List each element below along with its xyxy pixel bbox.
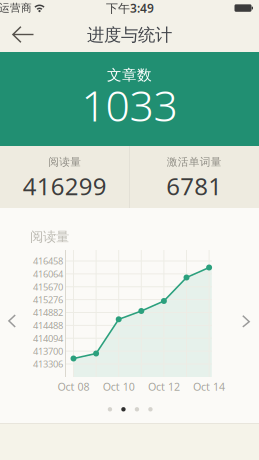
- staticText: 阅读量: [30, 228, 69, 245]
- staticText: 416299: [23, 170, 107, 202]
- staticText: 6781: [166, 170, 222, 202]
- staticText: 激活单词量: [167, 155, 222, 168]
- staticText: 文章数: [107, 66, 152, 84]
- staticText: 下午3:49: [106, 0, 154, 16]
- button[interactable]: Back: [3, 16, 41, 52]
- staticText: 阅读量: [48, 155, 81, 168]
- staticText: 415670: [33, 281, 63, 293]
- button[interactable]: Next page: [237, 311, 255, 333]
- staticText: 进度与统计: [87, 24, 172, 46]
- staticText: 414488: [33, 319, 63, 332]
- staticText: 1033: [81, 77, 177, 133]
- staticText: Oct 12: [148, 379, 180, 394]
- button[interactable]: Previous page: [3, 310, 21, 332]
- staticText: 运营商: [0, 1, 32, 14]
- staticText: 414882: [33, 306, 63, 319]
- staticText: 416064: [33, 268, 63, 280]
- staticText: 413700: [33, 345, 63, 357]
- staticText: 413306: [33, 358, 63, 370]
- staticText: Oct 10: [103, 379, 135, 394]
- staticText: 415276: [33, 293, 63, 306]
- staticText: 414094: [33, 332, 63, 344]
- staticText: 416458: [33, 255, 63, 267]
- staticText: Oct 14: [193, 379, 225, 394]
- staticText: Oct 08: [57, 379, 89, 394]
